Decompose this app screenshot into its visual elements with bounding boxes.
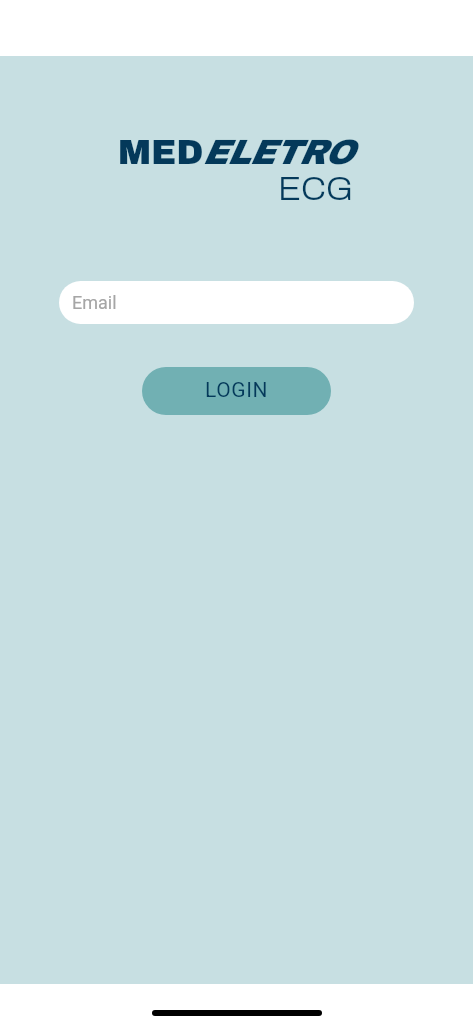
staticText: MED: [118, 133, 204, 171]
staticText: ECG: [278, 170, 354, 207]
staticText: LOGIN: [205, 378, 269, 403]
button[interactable]: Email: [59, 281, 414, 324]
staticText: ELETRO: [202, 133, 353, 171]
staticText: Email: [72, 292, 117, 313]
button[interactable]: LOGIN: [142, 367, 331, 415]
